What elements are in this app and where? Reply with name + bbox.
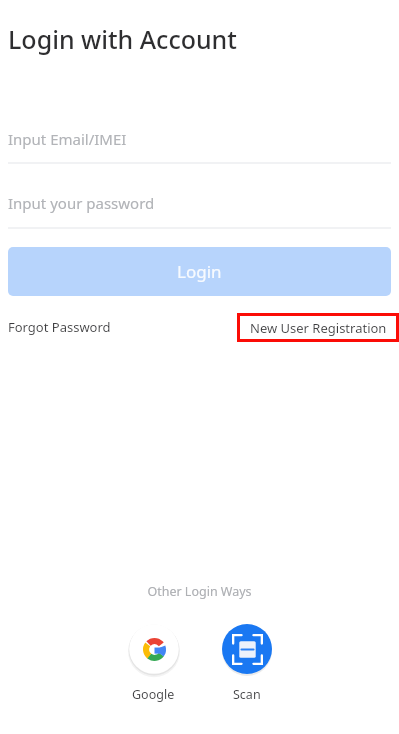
button[interactable]: New User Registration [237,313,399,342]
button[interactable]: Forgot Password [8,313,111,341]
staticText: Google [132,686,175,703]
button[interactable]: Google [107,622,200,703]
button[interactable]: Input your password [8,179,391,227]
staticText: New User Registration [250,319,387,337]
staticText: Input Email/IMEI [8,129,127,149]
staticText: Login [177,260,222,283]
staticText: Login with Account [8,22,237,56]
button[interactable]: Login [8,247,391,296]
button[interactable]: Input Email/IMEI [8,115,391,163]
staticText: Forgot Password [8,318,111,336]
staticText: Scan [233,686,261,703]
button[interactable]: Scan to login [200,622,293,703]
staticText: Input your password [8,193,155,213]
staticText: Other Login Ways [147,583,252,600]
